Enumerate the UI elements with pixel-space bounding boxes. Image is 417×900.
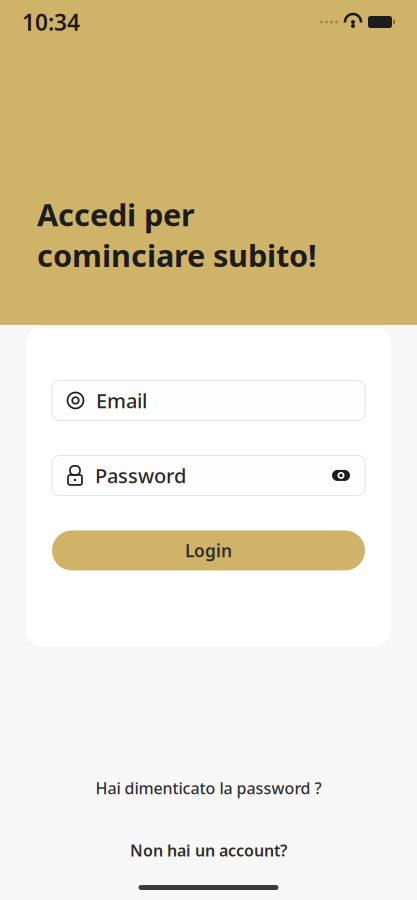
staticText: Accedi per cominciare subito! — [37, 194, 317, 275]
button[interactable]: Email — [52, 380, 365, 420]
staticText: Hai dimenticato la password ? — [95, 777, 321, 799]
staticText: Email — [96, 387, 147, 414]
button[interactable]: Password — [52, 455, 365, 495]
button[interactable]: Hai dimenticato la password ? — [85, 771, 331, 805]
staticText: Password — [95, 462, 186, 489]
staticText: Login — [185, 539, 232, 562]
button[interactable]: Non hai un account? — [120, 834, 297, 867]
staticText: 10:34 — [22, 7, 80, 37]
button[interactable]: Login — [52, 530, 365, 570]
staticText: Non hai un account? — [130, 840, 287, 861]
